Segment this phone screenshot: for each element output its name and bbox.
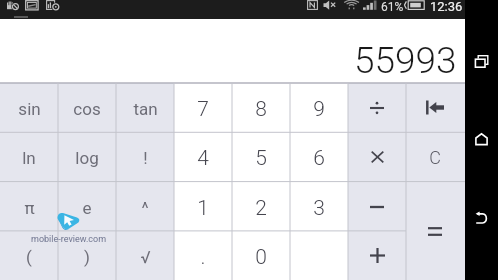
button[interactable]: Multiply (348, 132, 406, 181)
staticText: tan (133, 99, 158, 119)
staticText: 12:36 (430, 0, 463, 14)
button[interactable]: √ (116, 231, 174, 280)
button[interactable]: Backspace (406, 83, 464, 132)
staticText: ) (84, 247, 90, 267)
button[interactable]: 2 (232, 182, 290, 231)
button[interactable]: Subtract (348, 182, 406, 231)
button[interactable]: sin (0, 83, 58, 132)
staticText: √ (140, 247, 151, 267)
staticText: 6 (313, 146, 325, 171)
staticText: ^ (141, 198, 149, 218)
button[interactable]: e (58, 182, 116, 231)
staticText: sin (18, 99, 41, 119)
button[interactable]: C (406, 132, 464, 181)
button[interactable]: log (58, 132, 116, 181)
staticText: ( (26, 247, 32, 267)
staticText: 7 (197, 97, 209, 122)
button[interactable]: Recent apps (465, 44, 498, 79)
button[interactable]: ln (0, 132, 58, 181)
button[interactable]: 7 (174, 83, 232, 132)
staticText: 61% (381, 0, 404, 14)
button[interactable]: 4 (174, 132, 232, 181)
staticText: e (82, 198, 92, 218)
staticText: π (24, 198, 35, 218)
button[interactable]: 5 (232, 132, 290, 181)
button[interactable]: Home (465, 122, 498, 157)
button[interactable]: 9 (290, 83, 348, 132)
staticText: 2 (255, 196, 267, 221)
button[interactable]: ( (0, 231, 58, 280)
staticText: 1 (197, 196, 209, 221)
button[interactable]: 1 (174, 182, 232, 231)
staticText: mobile-review.com (31, 234, 107, 245)
staticText: ln (22, 148, 36, 168)
button[interactable]: 0 (232, 231, 290, 280)
button[interactable]: tan (116, 83, 174, 132)
button[interactable]: . (174, 231, 232, 280)
staticText: 9 (313, 97, 325, 122)
staticText: cos (73, 99, 101, 119)
button[interactable]: cos (58, 83, 116, 132)
staticText: 0 (255, 245, 267, 270)
button[interactable]: Divide (348, 83, 406, 132)
staticText: C (429, 147, 441, 168)
staticText: . (200, 245, 206, 270)
button[interactable]: ) (58, 231, 116, 280)
button[interactable]: ! (116, 132, 174, 181)
staticText: 3 (313, 196, 325, 221)
button[interactable]: 8 (232, 83, 290, 132)
staticText: 5 (255, 146, 267, 171)
button[interactable]: π (0, 182, 58, 231)
button[interactable]: Equals (406, 182, 464, 280)
staticText: log (75, 148, 99, 168)
staticText: 4 (197, 146, 209, 171)
button[interactable]: 6 (290, 132, 348, 181)
button[interactable]: Back (465, 201, 498, 236)
button[interactable]: ^ (116, 182, 174, 231)
staticText: ! (143, 148, 148, 168)
staticText: 55993 (354, 39, 457, 82)
staticText: 8 (255, 97, 267, 122)
button[interactable]: Add (348, 231, 406, 280)
button[interactable]: 3 (290, 182, 348, 231)
